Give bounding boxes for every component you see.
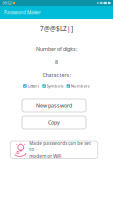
- button[interactable]: Letters: [23, 82, 39, 90]
- staticText: Characters:: [42, 71, 70, 79]
- button[interactable]: Numbers: [67, 82, 90, 90]
- button[interactable]: New password: [22, 99, 86, 112]
- staticText: 7@@$LZ|]: [40, 24, 73, 33]
- staticText: Made passwords can be set to: [29, 140, 91, 152]
- staticText: Letters: [27, 83, 39, 89]
- button[interactable]: Made passwords can be set to: [10, 141, 98, 158]
- button[interactable]: Symbols: [42, 82, 64, 90]
- staticText: Password Maker: [4, 9, 41, 16]
- staticText: Numbers: [71, 83, 90, 89]
- button[interactable]: Copy: [22, 116, 86, 129]
- staticText: 8: [55, 58, 58, 66]
- staticText: New password: [36, 102, 72, 109]
- staticText: Symbols: [47, 83, 64, 89]
- staticText: Copy: [48, 119, 60, 126]
- staticText: Number of digits:: [36, 45, 77, 53]
- staticText: modem or WiFi: [29, 153, 61, 159]
- staticText: 09:52: [2, 0, 11, 6]
